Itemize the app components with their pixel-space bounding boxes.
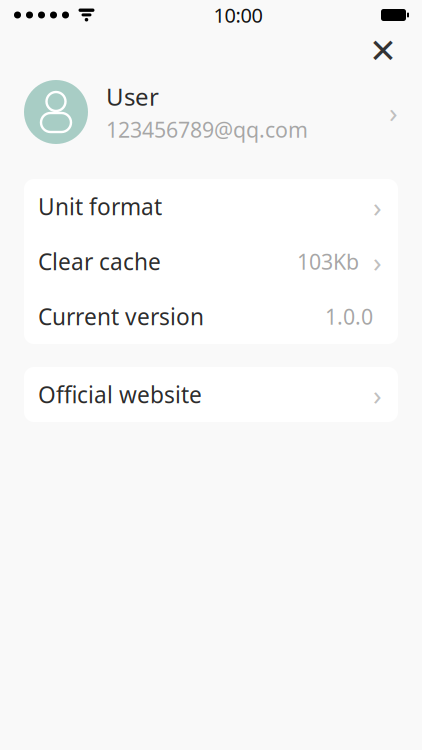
staticText: User xyxy=(106,80,159,112)
staticText: 10:00 xyxy=(213,2,262,28)
staticText: 103Kb xyxy=(297,247,359,276)
button[interactable]: User xyxy=(0,72,422,152)
staticText: › xyxy=(373,376,382,413)
button[interactable]: Current version xyxy=(24,289,398,344)
button[interactable]: Official website xyxy=(24,367,398,422)
staticText: Current version xyxy=(38,301,204,331)
staticText: › xyxy=(373,188,382,225)
staticText: › xyxy=(373,243,382,280)
staticText: Unit format xyxy=(38,191,162,221)
staticText: ✕ xyxy=(369,32,397,70)
staticText: 123456789@qq.com xyxy=(106,115,308,144)
button[interactable]: Close xyxy=(360,31,406,71)
staticText: › xyxy=(389,93,398,131)
button[interactable]: Clear cache xyxy=(24,234,398,289)
staticText: Clear cache xyxy=(38,246,161,276)
staticText: 1.0.0 xyxy=(325,302,373,331)
staticText: Official website xyxy=(38,379,202,409)
button[interactable]: Unit format xyxy=(24,179,398,234)
